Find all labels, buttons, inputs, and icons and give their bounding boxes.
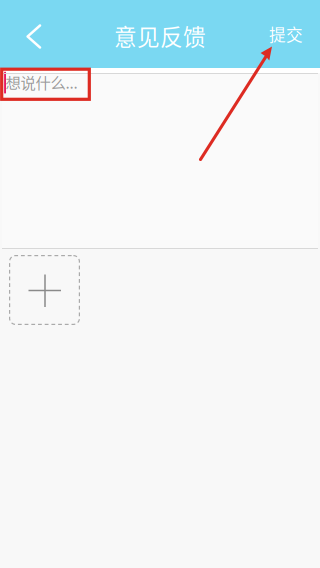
staticText: 提交 <box>269 22 303 46</box>
staticText: 意见反馈 <box>114 19 206 52</box>
staticText: 想说什么... <box>5 71 77 93</box>
button[interactable]: Back <box>0 0 57 68</box>
button[interactable]: Add photo <box>9 255 80 325</box>
button[interactable]: 提交 <box>255 0 320 68</box>
